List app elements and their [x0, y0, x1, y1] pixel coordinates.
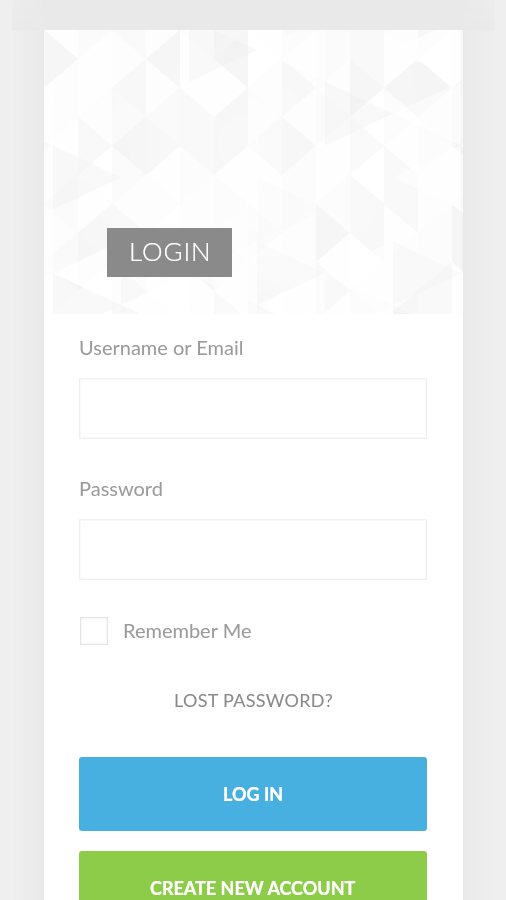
staticText: LOG IN	[223, 783, 284, 805]
staticText: Username or Email	[79, 335, 244, 359]
staticText: Password	[79, 476, 163, 500]
other: Remember me checkbox	[80, 617, 108, 645]
staticText: CREATE NEW ACCOUNT	[150, 877, 356, 899]
button[interactable]: Username or Email input	[79, 378, 427, 439]
staticText: LOGIN	[129, 235, 212, 266]
button[interactable]: Remember me checkbox	[80, 616, 252, 646]
button[interactable]: LOGIN	[107, 228, 232, 277]
button[interactable]: CREATE NEW ACCOUNT	[79, 851, 427, 900]
button[interactable]: LOG IN	[79, 757, 427, 831]
button[interactable]: LOST PASSWORD?	[174, 689, 334, 711]
button[interactable]: Password input	[79, 519, 427, 580]
staticText: Remember Me	[123, 618, 252, 642]
